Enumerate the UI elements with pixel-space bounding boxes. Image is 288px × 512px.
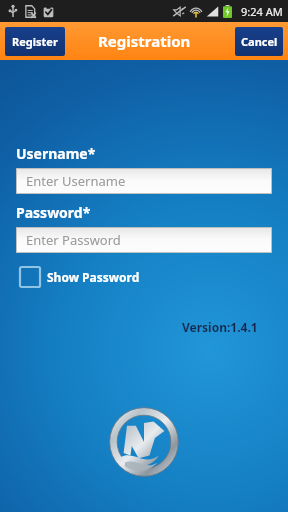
button[interactable]: Enter Username: [16, 168, 272, 194]
staticText: Register: [12, 34, 58, 49]
staticText: Show Password: [47, 269, 140, 285]
staticText: Username*: [16, 144, 96, 163]
staticText: Version:1.4.1: [182, 319, 258, 335]
staticText: Cancel: [241, 34, 278, 49]
staticText: Registration: [98, 31, 191, 51]
staticText: Enter Password: [26, 231, 121, 249]
button[interactable]: Cancel: [235, 27, 283, 56]
button[interactable]: Register: [5, 27, 65, 56]
button[interactable]: Enter Password: [16, 227, 272, 253]
button[interactable]: Show Password: [20, 265, 146, 289]
staticText: 9:24 AM: [241, 4, 283, 19]
staticText: Password*: [16, 203, 91, 222]
staticText: Enter Username: [26, 172, 126, 190]
